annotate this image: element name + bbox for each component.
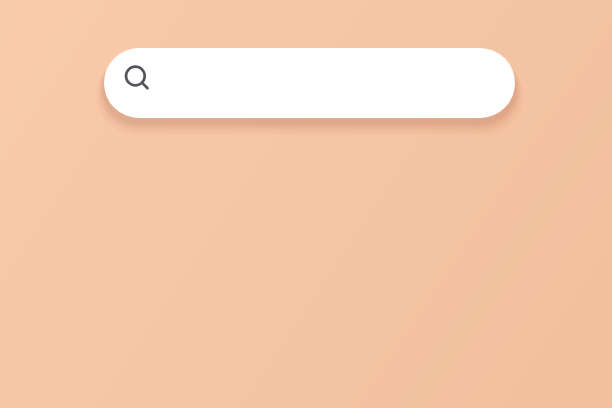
button[interactable]: Search: [104, 48, 515, 118]
button[interactable]: Search: [125, 66, 159, 100]
